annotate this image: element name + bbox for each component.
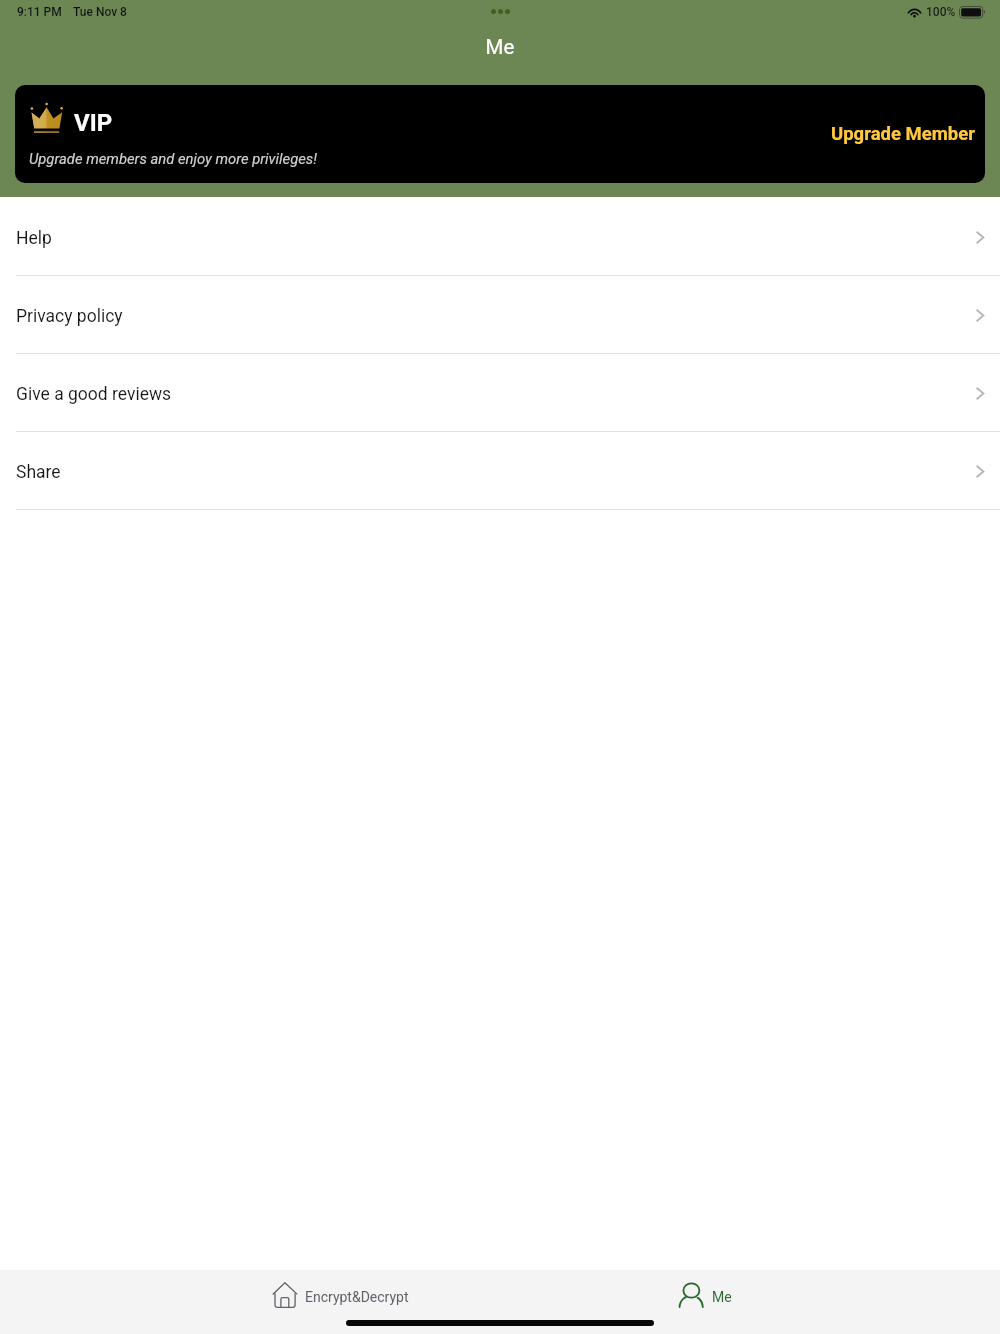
staticText: 9:11 PM (17, 5, 62, 19)
staticText: Tue Nov 8 (73, 5, 127, 19)
staticText: Share (16, 462, 61, 483)
button[interactable]: Give a good reviews (0, 354, 1000, 432)
button[interactable]: Encrypt&Decrypt (264, 1273, 417, 1315)
button[interactable]: Upgrade Member (825, 117, 985, 151)
staticText: Privacy policy (16, 306, 123, 327)
staticText: Me (0, 35, 1000, 59)
staticText: Upgrade Member (831, 123, 975, 145)
staticText: Upgrade members and enjoy more privilege… (29, 150, 317, 167)
staticText: VIP (74, 109, 113, 137)
staticText: 100% (926, 5, 956, 19)
button[interactable]: Help (0, 198, 1000, 276)
staticText: Me (712, 1289, 732, 1305)
button[interactable]: Share (0, 432, 1000, 510)
staticText: Encrypt&Decrypt (305, 1289, 409, 1305)
staticText: Give a good reviews (16, 384, 172, 405)
button[interactable]: VIP membership banner (15, 85, 985, 183)
button[interactable]: Privacy policy (0, 276, 1000, 354)
staticText: Help (16, 228, 52, 249)
button[interactable]: Me (670, 1273, 740, 1315)
